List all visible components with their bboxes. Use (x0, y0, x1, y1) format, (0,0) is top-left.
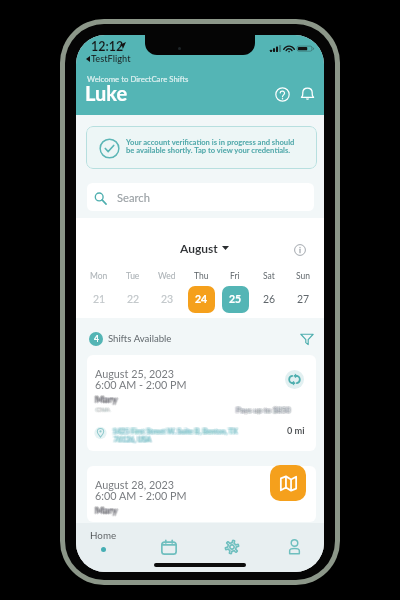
staticText: Luke (85, 81, 128, 105)
staticText: Mary (97, 505, 120, 516)
staticText: 1425 First Street W. Suite B, Benton, TX (113, 427, 238, 435)
button[interactable]: 25 (222, 286, 249, 313)
button[interactable]: Filter (297, 329, 317, 349)
staticText: 1425 First Street W. Suite B, Benton, TX (112, 427, 237, 435)
staticText: Mary (96, 505, 119, 516)
button[interactable]: Profile (272, 525, 316, 569)
staticText: 76126, USA (114, 434, 152, 442)
button[interactable]: August 25, 2023 (87, 355, 316, 451)
button[interactable]: Search (87, 183, 314, 211)
button[interactable]: 23 (154, 286, 181, 313)
button[interactable]: 27 (290, 286, 317, 313)
staticText: Mary (94, 394, 117, 405)
staticText: Mary (96, 393, 119, 404)
staticText: Mary (95, 394, 118, 405)
staticText: 1425 First Street W. Suite B, Benton, TX (112, 426, 237, 434)
button[interactable]: August (180, 241, 229, 255)
staticText: Pays up to $850 (237, 404, 292, 413)
staticText: CNA (95, 405, 109, 413)
staticText: 26 (263, 293, 276, 306)
staticText: 1425 First Street W. Suite B, Benton, TX (113, 426, 238, 434)
staticText: CNA (95, 406, 109, 414)
staticText: 76126, USA (114, 435, 152, 443)
staticText: Mary (94, 504, 117, 515)
staticText: Mary (95, 393, 118, 404)
staticText: CNA (96, 406, 110, 414)
staticText: Pays up to $850 (237, 405, 292, 414)
staticText: August 28, 2023 (95, 478, 174, 491)
staticText: 24 (195, 293, 208, 306)
staticText: 27 (297, 293, 310, 306)
staticText: CNA (98, 406, 112, 414)
button[interactable]: Info (291, 241, 309, 259)
staticText: Mary (97, 394, 120, 405)
staticText: 1425 First Street W. Suite B, Benton, TX (114, 427, 239, 435)
staticText: Pays up to $850 (235, 406, 290, 415)
staticText: Pays up to $850 (236, 406, 291, 415)
staticText: 76126, USA (112, 436, 150, 444)
staticText: 76126, USA (114, 436, 152, 444)
staticText: Mary (96, 394, 119, 405)
staticText: Mon (90, 271, 108, 281)
staticText: Thu (194, 271, 209, 281)
button[interactable]: 24 (188, 286, 215, 313)
staticText: 1425 First Street W. Suite B, Benton, TX (113, 426, 238, 434)
staticText: Mary (94, 504, 117, 515)
staticText: Mary (95, 394, 118, 405)
staticText: Mary (94, 506, 117, 517)
staticText: 6:00 AM - 2:00 PM (95, 489, 187, 502)
button[interactable]: 26 (256, 286, 283, 313)
button[interactable]: 21 (86, 286, 113, 313)
button[interactable]: Your account verification is in progress… (86, 126, 317, 169)
staticText: 1425 First Street W. Suite B, Benton, TX (111, 427, 236, 435)
staticText: 21 (93, 293, 106, 306)
staticText: 76126, USA (114, 436, 152, 444)
staticText: Pays up to $850 (236, 404, 291, 413)
staticText: CNA (94, 406, 108, 414)
staticText: CNA (97, 405, 111, 413)
staticText: 1425 First Street W. Suite B, Benton, TX (112, 428, 237, 436)
staticText: Wed (158, 271, 176, 281)
button[interactable]: Help (271, 83, 293, 105)
button[interactable]: Open map (270, 465, 306, 501)
staticText: 6:00 AM - 2:00 PM (95, 378, 187, 391)
staticText: 1425 First Street W. Suite B, Benton, TX (111, 428, 236, 436)
staticText: Pays up to $850 (237, 406, 292, 415)
staticText: CNA (95, 407, 109, 415)
button[interactable]: Recurring shift (283, 368, 306, 391)
staticText: Mary (94, 393, 117, 404)
staticText: 76126, USA (112, 435, 150, 443)
staticText: Mary (96, 504, 119, 515)
button[interactable]: Notifications (296, 83, 318, 105)
staticText: 76126, USA (115, 435, 153, 443)
staticText: CNA (96, 406, 110, 414)
staticText: Pays up to $850 (235, 405, 290, 414)
staticText: Mary (94, 393, 117, 404)
staticText: August (180, 241, 218, 255)
staticText: Mary (95, 505, 118, 516)
button[interactable]: Settings (210, 525, 254, 569)
staticText: CNA (97, 406, 111, 414)
staticText: Mary (96, 505, 119, 516)
button[interactable]: August 28, 2023 (87, 466, 316, 522)
staticText: Pays up to $850 (235, 404, 290, 413)
staticText: Mary (94, 395, 117, 406)
staticText: CNA (95, 406, 109, 414)
staticText: 76126, USA (115, 436, 153, 444)
staticText: CNA (95, 405, 109, 413)
staticText: 12:12 (91, 39, 124, 54)
staticText: Fri (230, 271, 240, 281)
staticText: Tue (126, 271, 140, 281)
staticText: Pays up to $850 (237, 404, 292, 413)
staticText: 0 mi (287, 425, 305, 436)
button[interactable]: 22 (120, 286, 147, 313)
button[interactable]: Home (78, 523, 128, 557)
staticText: Mary (96, 394, 119, 405)
staticText: Pays up to $850 (238, 405, 293, 414)
staticText: Pays up to $850 (237, 406, 292, 415)
staticText: 1425 First Street W. Suite B, Benton, TX (113, 428, 238, 436)
button[interactable]: Calendar (147, 525, 191, 569)
staticText: Mary (96, 393, 119, 404)
staticText: 23 (161, 293, 174, 306)
staticText: Your account verification is in progress… (126, 137, 295, 155)
